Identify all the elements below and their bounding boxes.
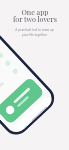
staticText: A practical tool to team up your life to… (15, 28, 54, 37)
staticText: One app for two lovers (13, 7, 57, 23)
